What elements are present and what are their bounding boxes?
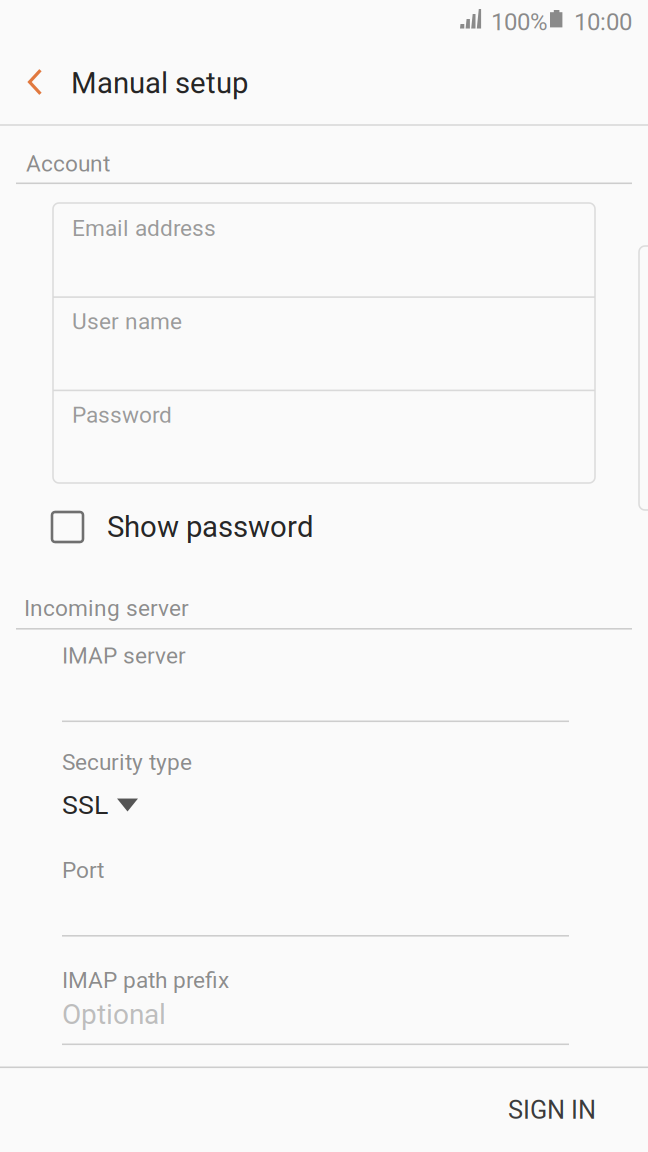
staticText: Show password <box>107 510 314 544</box>
staticText: Password <box>72 402 172 428</box>
staticText: Optional <box>62 998 166 1031</box>
staticText: 100% <box>491 8 548 36</box>
button[interactable]: SIGN IN <box>482 1068 622 1152</box>
staticText: SSL <box>62 789 108 821</box>
button[interactable]: Back <box>4 46 66 118</box>
staticText: Account <box>26 150 110 177</box>
staticText: IMAP server <box>62 642 186 669</box>
staticText: Email address <box>72 215 216 242</box>
button[interactable]: Show password <box>52 500 352 554</box>
staticText: Incoming server <box>24 595 189 622</box>
staticText: Port <box>62 857 104 884</box>
staticText: Security type <box>62 749 192 776</box>
staticText: SIGN IN <box>508 1095 596 1125</box>
staticText: IMAP path prefix <box>62 967 229 994</box>
staticText: 10:00 <box>574 8 632 36</box>
staticText: Manual setup <box>71 66 248 100</box>
button[interactable]: SSL <box>62 788 242 822</box>
staticText: User name <box>72 308 182 335</box>
